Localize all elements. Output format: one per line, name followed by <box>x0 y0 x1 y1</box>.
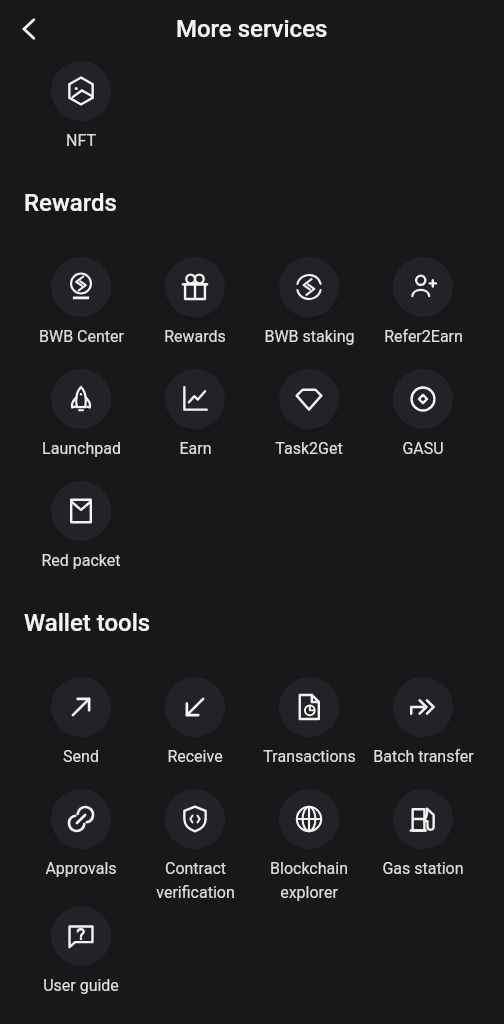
button[interactable]: Approvals <box>24 789 138 878</box>
button[interactable]: Red packet <box>24 481 138 570</box>
staticText: NFT <box>66 131 96 150</box>
button[interactable]: Earn <box>138 369 252 458</box>
button[interactable]: Refer2Earn <box>366 257 480 346</box>
staticText: Blockchain explorer <box>270 859 348 902</box>
button[interactable]: Rewards <box>138 257 252 346</box>
button[interactable]: NFT <box>24 61 138 150</box>
staticText: Rewards <box>164 327 226 346</box>
button[interactable]: Receive <box>138 677 252 766</box>
button[interactable]: Back <box>9 9 49 49</box>
staticText: Approvals <box>45 859 117 878</box>
button[interactable]: Contract verification <box>138 789 252 902</box>
button[interactable]: Batch transfer <box>366 677 480 766</box>
staticText: Batch transfer <box>373 747 474 766</box>
staticText: More services <box>176 15 328 43</box>
staticText: User guide <box>43 976 119 995</box>
button[interactable]: Task2Get <box>252 369 366 458</box>
button[interactable]: Gas station <box>366 789 480 878</box>
button[interactable]: Launchpad <box>24 369 138 458</box>
button[interactable]: User guide <box>24 906 138 995</box>
staticText: BWB staking <box>264 327 355 346</box>
staticText: Task2Get <box>275 439 343 458</box>
staticText: Receive <box>167 747 223 766</box>
button[interactable]: Blockchain explorer <box>252 789 366 902</box>
button[interactable]: Send <box>24 677 138 766</box>
staticText: Gas station <box>382 859 464 878</box>
staticText: Wallet tools <box>24 609 151 637</box>
staticText: Refer2Earn <box>384 327 463 346</box>
staticText: Launchpad <box>42 439 121 458</box>
button[interactable]: GASU <box>366 369 480 458</box>
staticText: Transactions <box>263 747 356 766</box>
staticText: Red packet <box>41 551 121 570</box>
staticText: BWB Center <box>39 327 124 346</box>
staticText: Earn <box>179 439 212 458</box>
button[interactable]: Transactions <box>252 677 366 766</box>
button[interactable]: BWB staking <box>252 257 366 346</box>
staticText: Contract verification <box>156 859 235 902</box>
staticText: GASU <box>402 439 444 458</box>
staticText: Rewards <box>24 189 117 217</box>
staticText: Send <box>63 747 99 766</box>
button[interactable]: BWB Center <box>24 257 138 346</box>
